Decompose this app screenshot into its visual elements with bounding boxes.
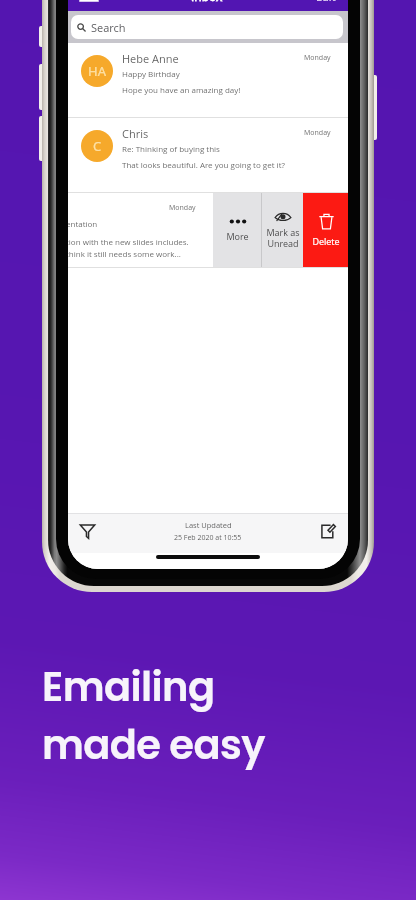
staticText: Delete <box>312 235 340 247</box>
staticText: That looks beautiful. Are you going to g… <box>122 159 285 170</box>
staticText: Edit <box>316 0 336 4</box>
staticText: Monday <box>169 203 196 213</box>
staticText: Hope you have an amazing day! <box>122 84 241 95</box>
button[interactable]: Mark as Unread <box>262 193 303 267</box>
staticText: C <box>93 137 102 155</box>
staticText: Inbox <box>191 0 223 4</box>
staticText: Monday <box>304 53 331 63</box>
button[interactable]: Menu <box>80 0 98 4</box>
staticText: Chris <box>122 126 149 141</box>
button[interactable]: Edit <box>316 0 336 4</box>
staticText: More <box>226 230 249 242</box>
staticText: Mark as Unread <box>266 226 300 249</box>
button[interactable]: entation <box>68 193 348 267</box>
button[interactable]: More <box>213 193 261 267</box>
staticText: Happy Birthday <box>122 68 180 79</box>
staticText: think it still needs some work... <box>68 248 181 259</box>
button[interactable]: C <box>68 118 348 192</box>
staticText: made easy <box>42 717 265 773</box>
button[interactable]: Filter <box>78 521 96 540</box>
staticText: entation <box>68 218 98 229</box>
staticText: tion with the new slides includes. <box>68 236 189 247</box>
button[interactable]: Search <box>71 15 343 39</box>
staticText: 25 Feb 2020 at 10:55 <box>174 533 242 543</box>
staticText: Hebe Anne <box>122 51 179 66</box>
button[interactable]: Delete <box>303 193 348 267</box>
staticText: HA <box>88 62 106 80</box>
button[interactable]: HA <box>68 43 348 117</box>
staticText: Re: Thinking of buying this <box>122 143 220 154</box>
staticText: Monday <box>304 128 331 138</box>
staticText: Search <box>91 20 126 35</box>
staticText: Emailing <box>42 659 215 715</box>
staticText: Last Updated <box>185 520 232 530</box>
button[interactable]: Compose <box>319 522 336 539</box>
